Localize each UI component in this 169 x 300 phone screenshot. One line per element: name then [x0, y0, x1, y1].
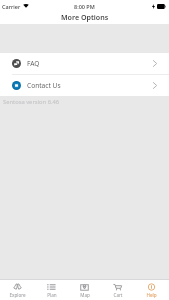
button[interactable]: Explore	[2, 279, 33, 300]
staticText: FAQ	[27, 59, 40, 68]
staticText: Sentosa version 6.46	[3, 98, 60, 106]
staticText: Help	[146, 292, 157, 298]
staticText: Carrier	[2, 3, 21, 10]
staticText: 8:00 PM	[74, 3, 95, 10]
button[interactable]: FAQ	[0, 53, 169, 74]
staticText: Contact Us	[27, 81, 61, 90]
staticText: Plan	[47, 292, 57, 298]
staticText: Map	[80, 292, 90, 298]
button[interactable]: Cart	[102, 279, 133, 300]
button[interactable]: Plan	[36, 279, 67, 300]
staticText: Cart	[113, 292, 123, 298]
staticText: Explore	[9, 292, 26, 298]
button[interactable]: Map	[69, 279, 100, 300]
staticText: More Options	[61, 12, 109, 22]
button[interactable]: Contact Us	[0, 75, 169, 96]
button[interactable]: Help	[136, 279, 167, 300]
